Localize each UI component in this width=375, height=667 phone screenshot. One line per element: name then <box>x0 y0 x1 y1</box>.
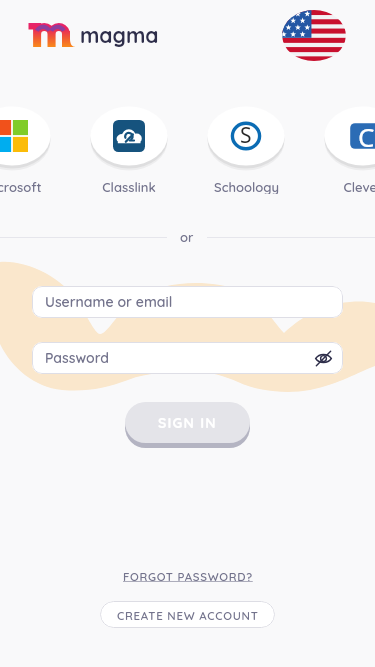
button[interactable]: S <box>202 102 290 194</box>
staticText: FORGOT PASSWORD? <box>123 569 253 583</box>
staticText: Password <box>45 349 109 367</box>
staticText: Classlink <box>102 179 156 194</box>
staticText: Microsoft <box>0 179 42 194</box>
staticText: magma <box>80 22 159 48</box>
staticText: SIGN IN <box>158 414 217 432</box>
button[interactable]: magma <box>28 22 159 48</box>
staticText: S <box>240 121 252 150</box>
button[interactable]: CREATE NEW ACCOUNT <box>100 601 275 628</box>
button[interactable]: Show password <box>310 345 336 371</box>
staticText: Username or email <box>45 293 173 311</box>
staticText: or <box>180 229 194 245</box>
staticText: C <box>358 119 375 151</box>
staticText: Clever <box>343 179 375 194</box>
button[interactable]: FORGOT PASSWORD? <box>117 566 259 586</box>
button[interactable]: Username or email <box>32 286 343 318</box>
button[interactable]: SIGN IN <box>125 402 250 443</box>
button[interactable]: Microsoft <box>0 102 56 194</box>
button[interactable]: Password <box>32 342 343 374</box>
staticText: Schoology <box>214 179 279 194</box>
button[interactable]: Classlink <box>85 102 173 194</box>
button[interactable]: Change country <box>282 10 346 61</box>
button[interactable]: C <box>319 102 375 194</box>
staticText: CREATE NEW ACCOUNT <box>117 608 259 622</box>
